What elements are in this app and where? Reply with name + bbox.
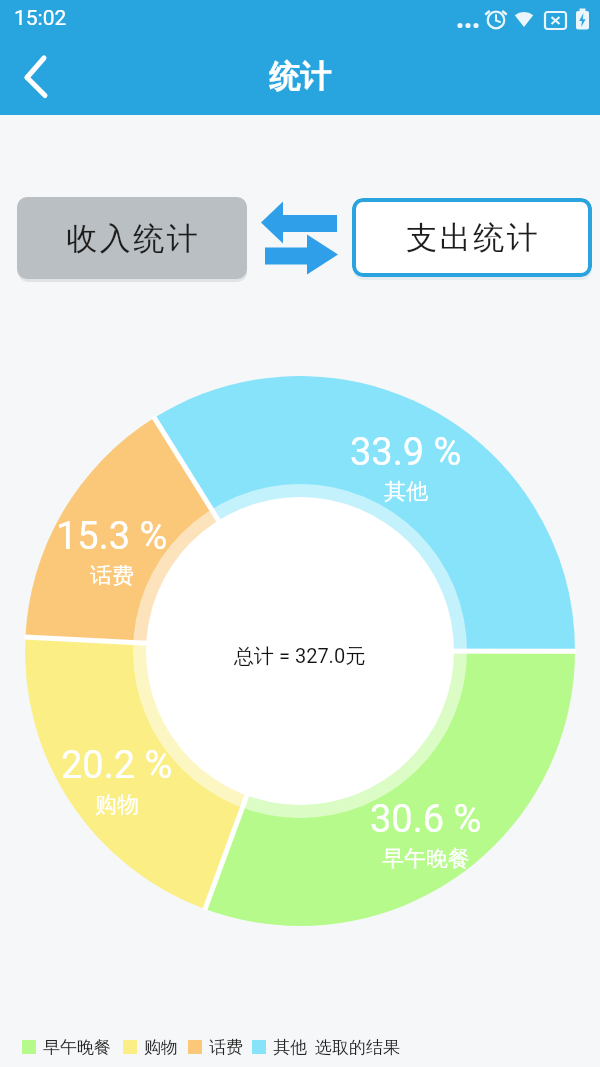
staticText: 15:02	[14, 6, 67, 31]
staticText: 选取的结果	[315, 1037, 400, 1058]
button[interactable]: 支出统计	[352, 198, 592, 277]
staticText: 统计	[269, 57, 331, 96]
staticText: 15.3 %	[56, 514, 168, 559]
staticText: 其他	[384, 478, 428, 506]
staticText: 33.9 %	[350, 430, 462, 475]
staticText: 话费	[90, 562, 134, 590]
staticText: 早午晚餐	[43, 1037, 111, 1058]
staticText: 购物	[144, 1037, 178, 1058]
staticText: 20.2 %	[61, 743, 173, 788]
staticText: 早午晚餐	[382, 845, 470, 873]
staticText: 收入统计	[65, 219, 199, 258]
staticText: 其他	[273, 1037, 307, 1058]
staticText: 话费	[209, 1037, 243, 1058]
button[interactable]: 收入统计	[17, 197, 247, 279]
staticText: 支出统计	[405, 218, 539, 257]
staticText: 购物	[95, 791, 139, 819]
staticText: 30.6 %	[370, 797, 482, 842]
staticText: 总计 = 327.0元	[234, 644, 366, 669]
button[interactable]	[0, 40, 80, 115]
